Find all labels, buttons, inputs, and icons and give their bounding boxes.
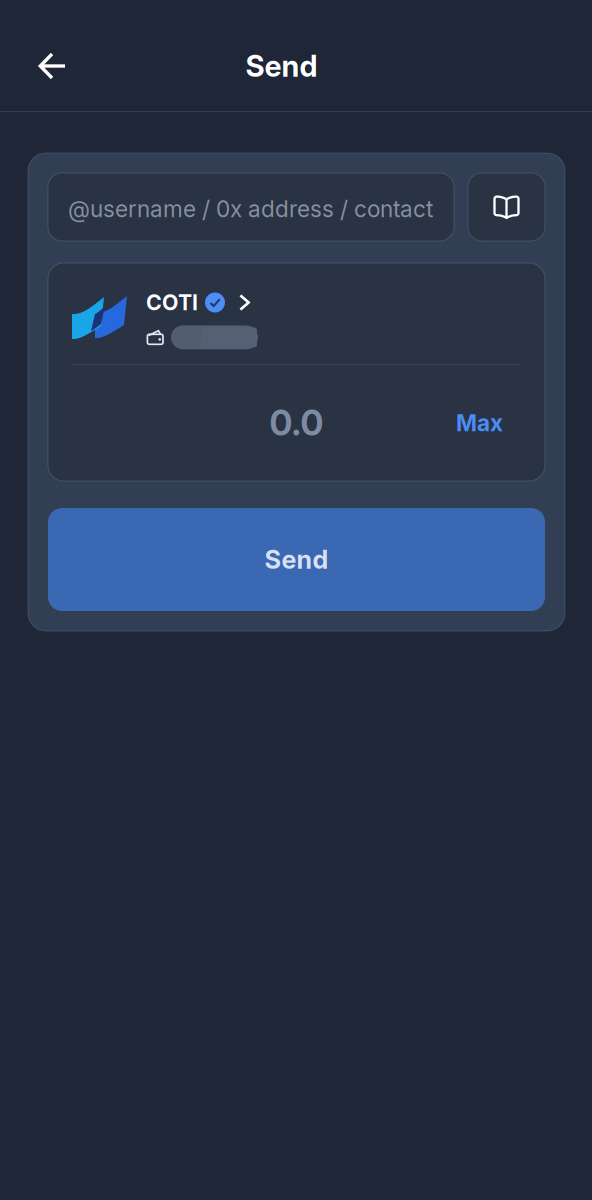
button[interactable]: Send — [48, 508, 545, 611]
button[interactable]: COTI — [48, 263, 545, 364]
staticText: Send — [264, 544, 328, 575]
button[interactable]: Back — [24, 37, 82, 95]
button[interactable]: Address book — [468, 173, 545, 241]
staticText: Max — [456, 409, 503, 437]
staticText: @username / 0x address / contact — [68, 195, 433, 223]
staticText: 0.0 — [269, 402, 323, 444]
staticText: Send — [245, 48, 317, 84]
staticText: COTI — [146, 290, 198, 315]
button[interactable]: Max — [456, 409, 503, 437]
